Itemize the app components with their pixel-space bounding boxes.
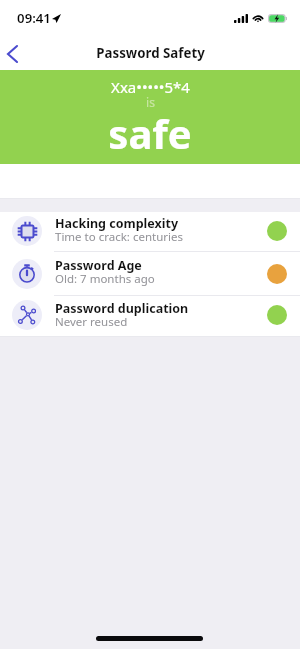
button[interactable]: Back [0,40,28,70]
staticText: 09:41 [17,9,51,27]
staticText: Password Safety [96,44,205,62]
staticText: Old: 7 months ago [55,271,155,287]
staticText: Never reused [55,314,128,330]
staticText: Xxa•••••5*4 [111,77,190,97]
staticText: safe [108,106,192,157]
staticText: Time to crack: centuries [55,229,183,245]
button[interactable]: Password Age [0,252,300,295]
button[interactable]: Hacking complexity [0,212,300,251]
button[interactable]: Password duplication [0,296,300,336]
staticText: Password Age [55,257,142,274]
staticText: Hacking complexity [55,215,179,232]
staticText: Password duplication [55,300,189,317]
staticText: is [146,94,155,110]
